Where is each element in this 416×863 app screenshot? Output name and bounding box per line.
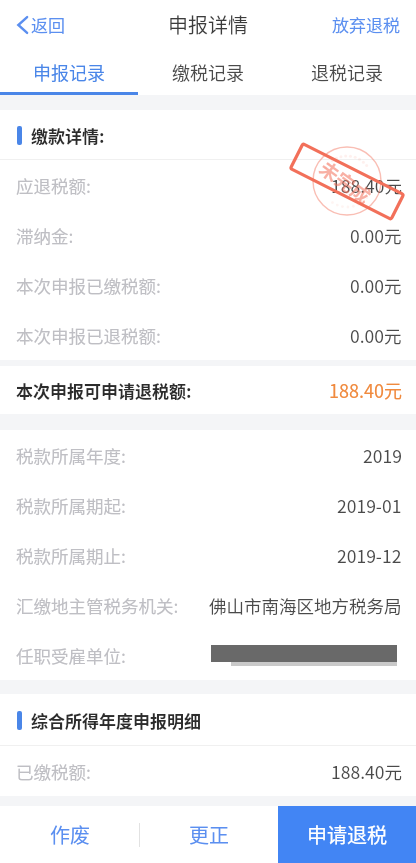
staticText: 本次申报可申请退税额:: [16, 378, 192, 403]
button[interactable]: 本次申报已缴税额:: [0, 260, 416, 310]
button[interactable]: 更正: [140, 806, 278, 863]
staticText: 汇缴地主管税务机关:: [16, 593, 179, 618]
staticText: 本次申报已退税额:: [16, 323, 161, 348]
staticText: 佛山市南海区地方税务局: [209, 593, 402, 618]
button[interactable]: 返回: [0, 4, 77, 45]
staticText: 申报记录: [33, 59, 105, 85]
staticText: 188.40元: [329, 377, 402, 403]
button[interactable]: 已缴税额:: [0, 746, 416, 796]
staticText: 2019-01: [337, 493, 402, 518]
button[interactable]: 放弃退税: [318, 4, 416, 45]
staticText: 已缴税额:: [16, 759, 91, 784]
button[interactable]: 税款所属期起:: [0, 480, 416, 530]
staticText: 作废: [50, 820, 90, 849]
button[interactable]: 申报记录: [0, 48, 138, 95]
staticText: 2019-12: [337, 543, 402, 568]
button[interactable]: 退税记录: [277, 48, 416, 95]
staticText: 188.40元: [331, 173, 402, 198]
button[interactable]: 缴税记录: [138, 48, 277, 95]
staticText: 2019: [363, 443, 402, 468]
button[interactable]: 应退税额:: [0, 160, 416, 210]
staticText: 0.00元: [350, 323, 402, 348]
button[interactable]: 税款所属期止:: [0, 530, 416, 580]
staticText: 未完成: [314, 154, 378, 210]
staticText: 税款所属期起:: [16, 493, 126, 518]
staticText: 缴款详情:: [31, 123, 105, 148]
staticText: 0.00元: [350, 223, 402, 248]
staticText: 更正: [189, 820, 229, 849]
staticText: 退税记录: [311, 59, 383, 85]
button[interactable]: 本次申报可申请退税额:: [0, 366, 416, 414]
button[interactable]: 任职受雇单位:: [0, 630, 416, 680]
staticText: 应退税额:: [16, 173, 91, 198]
staticText: 申请退税: [307, 820, 387, 849]
button[interactable]: 滞纳金:: [0, 210, 416, 260]
staticText: 税款所属年度:: [16, 443, 126, 468]
staticText: 188.40元: [331, 759, 402, 784]
staticText: 0.00元: [350, 273, 402, 298]
staticText: 税款所属期止:: [16, 543, 126, 568]
staticText: 任职受雇单位:: [16, 643, 126, 668]
button[interactable]: 汇缴地主管税务机关:: [0, 580, 416, 630]
staticText: 综合所得年度申报明细: [31, 708, 201, 733]
button[interactable]: 税款所属年度:: [0, 430, 416, 480]
button[interactable]: 申请退税: [278, 806, 416, 863]
staticText: 缴税记录: [172, 59, 244, 85]
staticText: 本次申报已缴税额:: [16, 273, 161, 298]
staticText: 放弃退税: [332, 12, 400, 37]
button[interactable]: 本次申报已退税额:: [0, 310, 416, 360]
button[interactable]: 作废: [0, 806, 139, 863]
staticText: 返回: [31, 12, 65, 37]
staticText: 滞纳金:: [16, 223, 74, 248]
staticText: 申报详情: [168, 10, 248, 39]
